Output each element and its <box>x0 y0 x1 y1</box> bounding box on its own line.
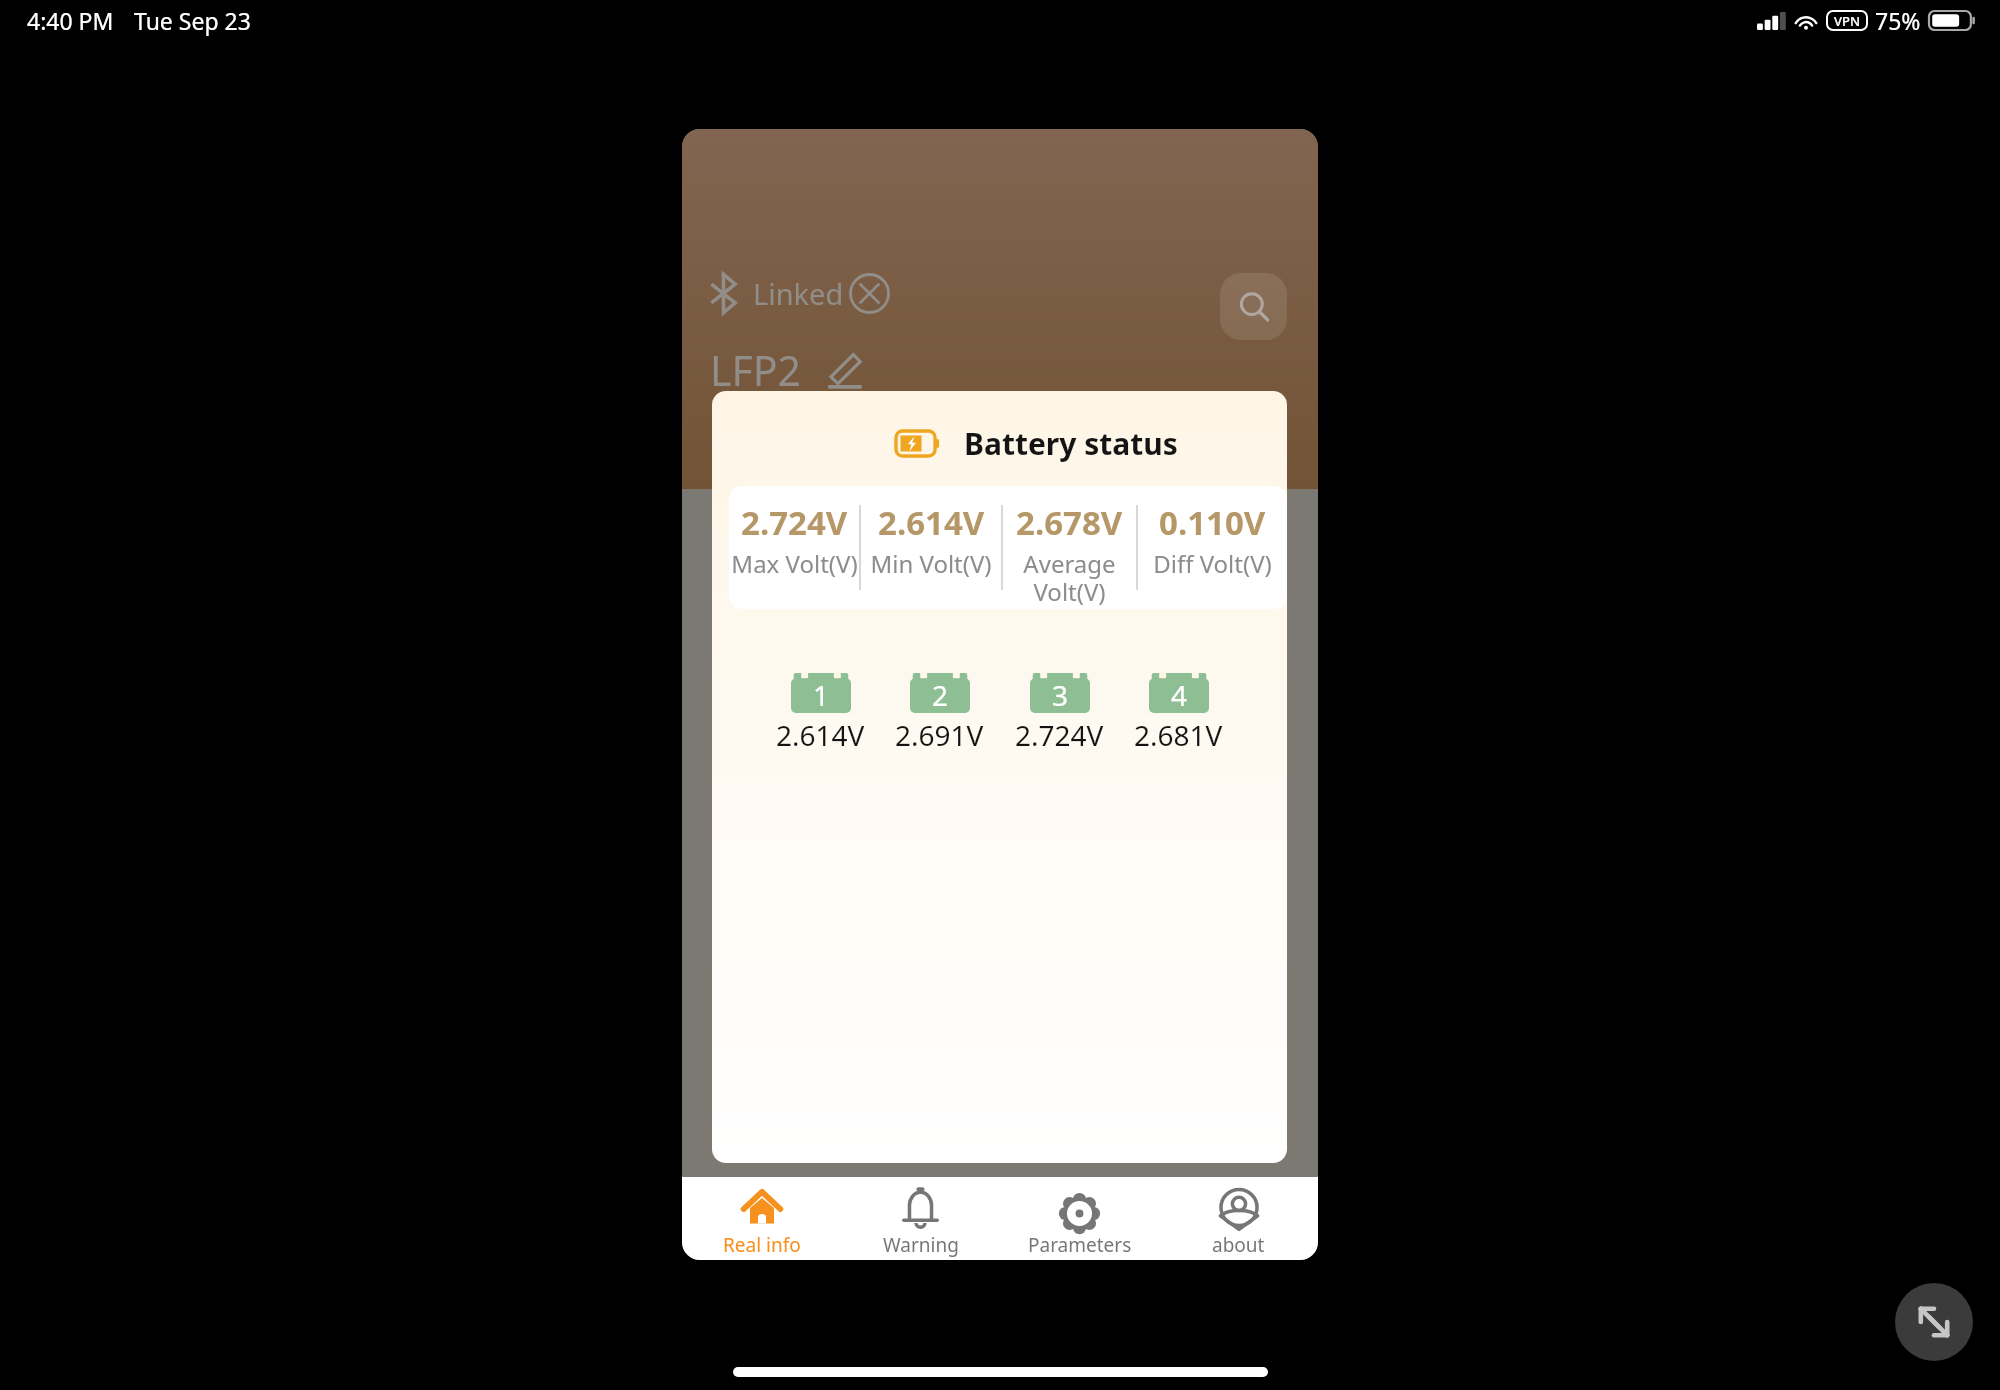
button[interactable]: about <box>1159 1177 1318 1260</box>
staticText: Linked <box>753 274 844 313</box>
staticText: about <box>1212 1232 1265 1258</box>
staticText: 1 <box>813 676 830 714</box>
staticText: Warning <box>883 1232 959 1258</box>
button[interactable]: Search <box>1220 273 1287 340</box>
button[interactable]: 2 <box>895 673 984 754</box>
staticText: Average Volt(V) <box>1004 547 1135 608</box>
button[interactable]: Expand <box>1895 1283 1973 1361</box>
staticText: 2.691V <box>895 716 984 754</box>
staticText: 2.724V <box>1015 716 1104 754</box>
staticText: 2.614V <box>878 500 985 545</box>
button[interactable]: Real info <box>682 1177 841 1260</box>
button[interactable]: Warning <box>841 1177 1000 1260</box>
staticText: 2.681V <box>1134 716 1223 754</box>
staticText: Diff Volt(V) <box>1153 547 1272 580</box>
staticText: Real info <box>723 1232 801 1258</box>
button[interactable]: 3 <box>1015 673 1104 754</box>
staticText: Battery status <box>964 423 1178 464</box>
button[interactable]: 1 <box>776 673 865 754</box>
staticText: LFP2 <box>710 342 802 398</box>
staticText: Parameters <box>1028 1232 1132 1258</box>
button[interactable]: 4 <box>1134 673 1223 754</box>
button[interactable]: Parameters <box>1000 1177 1159 1260</box>
staticText: 2.724V <box>741 500 848 545</box>
staticText: Max Volt(V) <box>731 547 858 580</box>
staticText: VPN <box>1834 12 1861 30</box>
staticText: 2.614V <box>776 716 865 754</box>
button[interactable]: Linked <box>704 269 896 318</box>
staticText: 2 <box>932 676 949 714</box>
staticText: 4 <box>1171 676 1188 714</box>
button[interactable]: Edit name <box>826 352 862 388</box>
staticText: 4:40 PM <box>27 5 114 36</box>
staticText: Tue Sep 23 <box>134 5 251 36</box>
staticText: 0.110V <box>1159 500 1266 545</box>
staticText: 75% <box>1875 5 1921 36</box>
staticText: 2.678V <box>1016 500 1123 545</box>
staticText: 3 <box>1052 676 1069 714</box>
staticText: Min Volt(V) <box>870 547 992 580</box>
